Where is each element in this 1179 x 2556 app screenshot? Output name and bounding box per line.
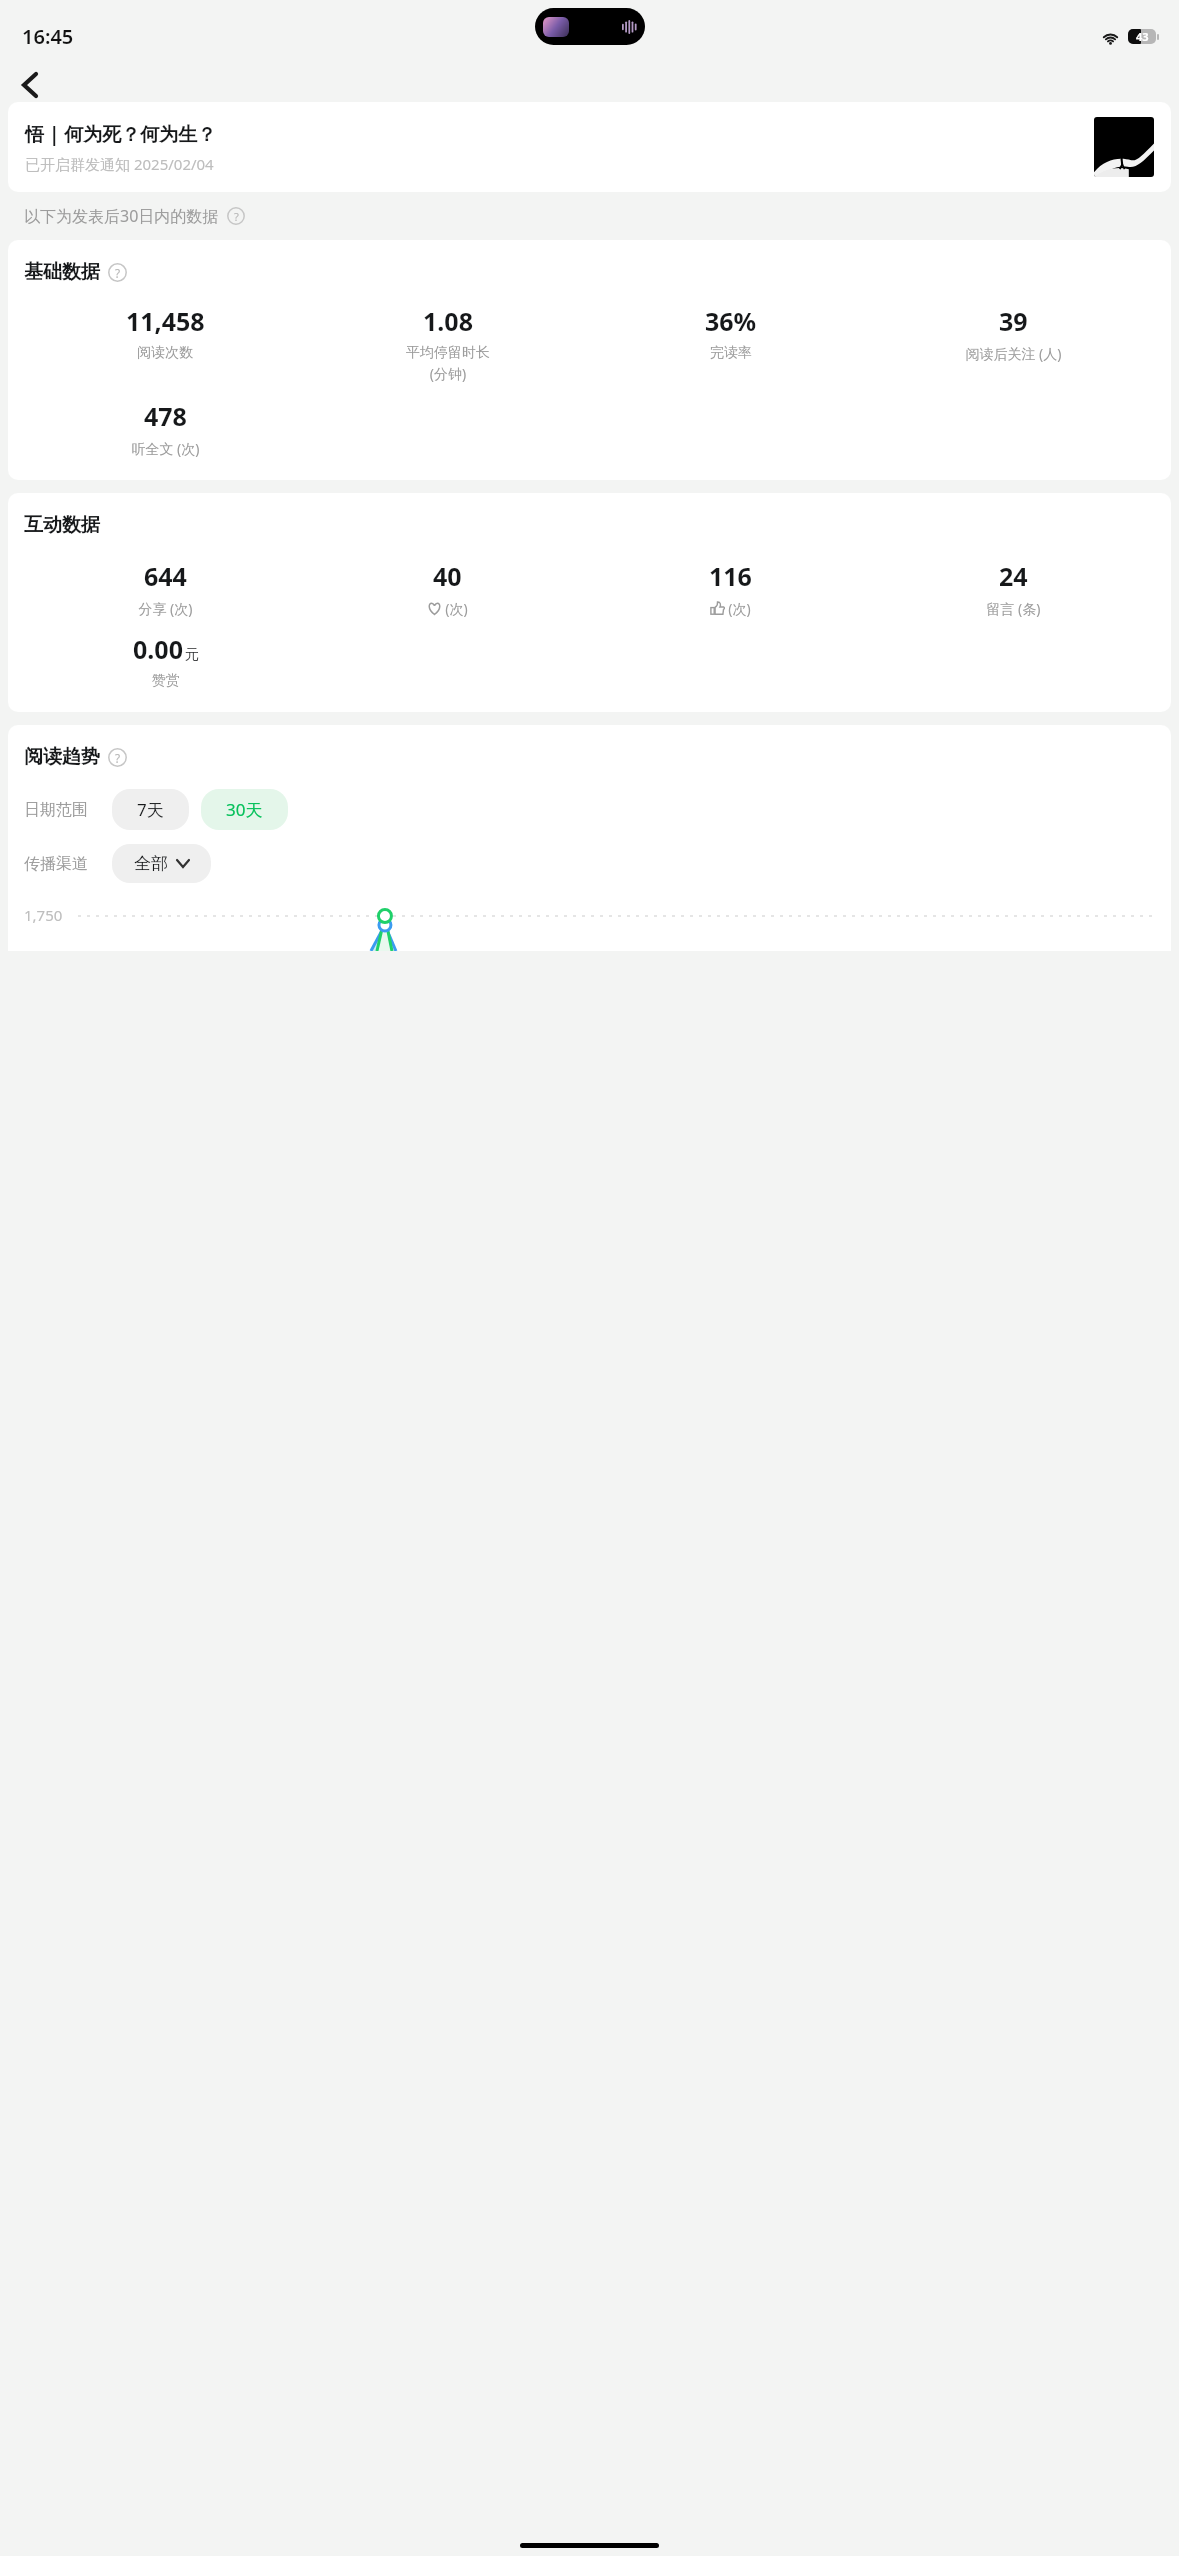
staticText: 阅读后关注 (人) — [965, 344, 1062, 363]
staticText: 元 — [185, 646, 199, 664]
staticText: 43 — [1136, 29, 1149, 44]
button[interactable]: 7天 — [112, 789, 189, 830]
staticText: ? — [234, 209, 239, 224]
staticText: 以下为发表后30日内的数据 — [24, 205, 219, 227]
button[interactable]: Help — [108, 263, 127, 282]
staticText: (次) — [728, 599, 751, 618]
button[interactable]: 11,458 — [24, 304, 306, 362]
staticText: 基础数据 — [24, 260, 100, 284]
staticText: 平均停留时长 (分钟) — [406, 344, 490, 383]
staticText: 完读率 — [710, 344, 752, 362]
button[interactable]: Help — [108, 748, 127, 767]
button[interactable]: 39 — [872, 304, 1155, 363]
staticText: 11,458 — [126, 304, 205, 338]
staticText: 30天 — [226, 798, 263, 821]
button[interactable]: 30天 — [201, 789, 288, 830]
staticText: 116 — [709, 559, 752, 593]
staticText: 传播渠道 — [24, 854, 88, 874]
button[interactable]: Help — [227, 207, 245, 225]
button[interactable]: 全部 — [112, 844, 211, 883]
staticText: 40 — [433, 559, 462, 593]
staticText: 阅读趋势 — [24, 745, 100, 769]
button[interactable]: 116 — [589, 559, 872, 618]
staticText: 16:45 — [22, 23, 74, 50]
staticText: (次) — [445, 599, 468, 618]
button[interactable]: 悟 | 何为死？何为生？ — [8, 102, 1171, 192]
button[interactable]: 36% — [589, 304, 872, 362]
staticText: 39 — [999, 304, 1028, 338]
staticText: 0.00 — [133, 632, 183, 666]
staticText: ? — [115, 265, 121, 281]
staticText: 听全文 (次) — [131, 439, 200, 458]
staticText: 分享 (次) — [138, 599, 193, 618]
button[interactable]: 0.00 — [24, 632, 307, 690]
button[interactable]: 1.08 — [306, 304, 589, 383]
staticText: 1,750 — [24, 905, 63, 925]
button[interactable]: 40 — [306, 559, 589, 618]
staticText: 日期范围 — [24, 800, 88, 820]
button[interactable]: 644 — [24, 559, 306, 618]
staticText: 赞赏 — [152, 672, 180, 690]
staticText: ? — [115, 750, 121, 766]
staticText: 36% — [705, 304, 757, 338]
staticText: 478 — [144, 399, 187, 433]
staticText: 全部 — [134, 853, 168, 874]
staticText: 已开启群发通知 2025/02/04 — [25, 154, 214, 174]
staticText: 7天 — [137, 798, 164, 821]
button[interactable]: 24 — [872, 559, 1155, 618]
button[interactable]: Back — [8, 68, 52, 102]
staticText: 留言 (条) — [986, 599, 1041, 618]
staticText: 644 — [144, 559, 187, 593]
staticText: 1.08 — [423, 304, 473, 338]
button[interactable]: 478 — [24, 399, 307, 458]
staticText: 互动数据 — [24, 513, 100, 537]
staticText: 悟 | 何为死？何为生？ — [25, 121, 217, 147]
staticText: 阅读次数 — [137, 344, 193, 362]
staticText: 24 — [999, 559, 1028, 593]
